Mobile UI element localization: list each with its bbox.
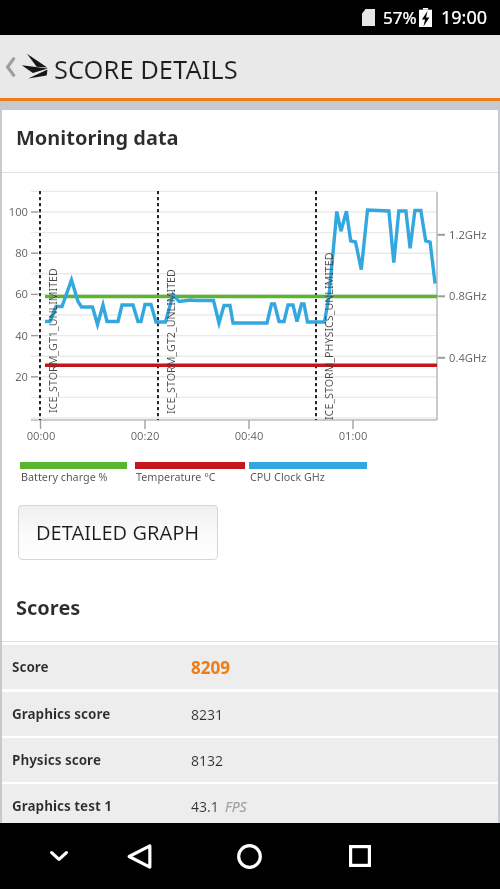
button[interactable]: Home <box>221 828 277 884</box>
button[interactable]: Graphics score <box>2 692 498 736</box>
staticText: 00:00 <box>16 428 66 443</box>
staticText: 19:00 <box>441 5 488 30</box>
staticText: SCORE DETAILS <box>54 52 238 87</box>
button[interactable]: Graphics test 1 <box>2 784 498 828</box>
staticText: Graphics test 1 <box>12 797 191 815</box>
staticText: Battery charge % <box>21 469 108 484</box>
staticText: 100 <box>0 204 28 219</box>
staticText: 8132 <box>191 751 224 770</box>
staticText: FPS <box>225 797 247 816</box>
staticText: CPU Clock GHz <box>250 469 325 484</box>
button[interactable]: Back <box>111 828 167 884</box>
staticText: 0.8GHz <box>449 288 487 303</box>
staticText: Temperature °C <box>136 469 216 484</box>
staticText: 8209 <box>191 656 230 679</box>
staticText: 43.1 <box>191 797 219 816</box>
button[interactable]: Score <box>2 645 498 689</box>
staticText: ICE_STORM_GT1_UNLIMITED <box>46 268 61 413</box>
staticText: Scores <box>16 594 81 621</box>
staticText: Graphics score <box>12 705 191 723</box>
staticText: ICE_STORM_PHYSICS_UNLIMITED <box>322 252 337 420</box>
staticText: 00:20 <box>120 428 170 443</box>
staticText: 20 <box>0 369 28 384</box>
staticText: DETAILED GRAPH <box>36 519 200 546</box>
staticText: 80 <box>0 245 28 260</box>
staticText: 60 <box>0 286 28 301</box>
staticText: 0.4GHz <box>449 350 487 365</box>
staticText: 01:00 <box>328 428 378 443</box>
staticText: 1.2GHz <box>449 227 487 242</box>
staticText: Score <box>12 658 191 676</box>
staticText: 8231 <box>191 705 224 724</box>
staticText: ICE_STORM_GT2_UNLIMITED <box>164 269 179 414</box>
button[interactable]: Physics score <box>2 738 498 782</box>
button[interactable]: Navigate up <box>2 43 52 90</box>
staticText: 57% <box>383 6 417 29</box>
staticText: Physics score <box>12 751 191 769</box>
staticText: Monitoring data <box>16 124 179 151</box>
staticText: 00:40 <box>224 428 274 443</box>
button[interactable]: Hide keyboard <box>31 828 87 884</box>
button[interactable]: DETAILED GRAPH <box>18 505 218 560</box>
staticText: 40 <box>0 328 28 343</box>
button[interactable]: Recent apps <box>332 828 388 884</box>
